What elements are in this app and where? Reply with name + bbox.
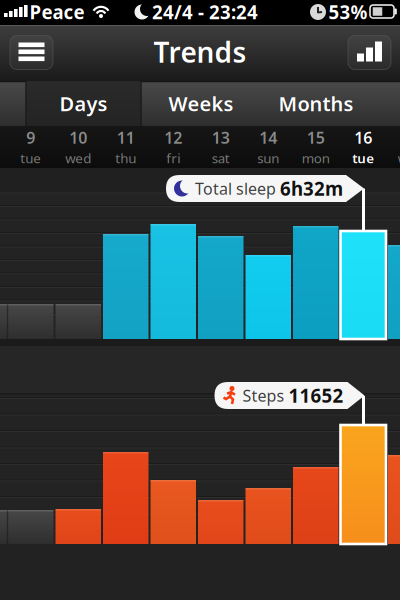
button[interactable]: Months <box>256 81 376 126</box>
staticText: wed <box>398 149 400 167</box>
staticText: mon <box>302 149 330 167</box>
staticText: 10 <box>69 127 87 148</box>
staticText: 15 <box>307 127 325 148</box>
staticText: thu <box>115 149 136 167</box>
staticText: 13 <box>212 127 230 148</box>
button[interactable]: 11 <box>103 127 148 167</box>
button[interactable]: 9 <box>8 127 53 167</box>
button[interactable] <box>348 35 391 69</box>
button[interactable]: 13 <box>198 127 243 167</box>
staticText: 12 <box>164 127 182 148</box>
staticText: Steps <box>242 385 284 406</box>
staticText: Days <box>59 90 107 117</box>
button[interactable]: 14 <box>246 127 291 167</box>
staticText: Total sleep <box>195 178 276 199</box>
staticText: sat <box>212 149 230 167</box>
staticText: 24/4 - 23:24 <box>152 0 258 24</box>
staticText: wed <box>65 149 91 167</box>
button[interactable]: 16 <box>341 127 386 167</box>
staticText: 11652 <box>288 383 343 408</box>
staticText: Weeks <box>168 90 233 117</box>
staticText: Trends <box>153 33 246 71</box>
staticText: Peace <box>29 0 84 24</box>
button[interactable]: 17 <box>388 127 400 167</box>
staticText: fri <box>166 149 180 167</box>
staticText: 11 <box>117 127 135 148</box>
staticText: 6h32m <box>280 176 343 201</box>
staticText: 14 <box>259 127 277 148</box>
staticText: 16 <box>354 127 372 148</box>
button[interactable]: Weeks <box>141 81 261 126</box>
button[interactable]: Days <box>26 81 140 126</box>
button[interactable] <box>10 35 53 69</box>
staticText: 53% <box>328 0 367 24</box>
staticText: sun <box>257 149 279 167</box>
staticText: 9 <box>26 127 35 148</box>
staticText: tue <box>20 149 41 167</box>
button[interactable]: 10 <box>56 127 101 167</box>
staticText: Months <box>278 90 353 117</box>
button[interactable]: 12 <box>151 127 196 167</box>
button[interactable]: 15 <box>293 127 338 167</box>
staticText: tue <box>352 149 374 167</box>
